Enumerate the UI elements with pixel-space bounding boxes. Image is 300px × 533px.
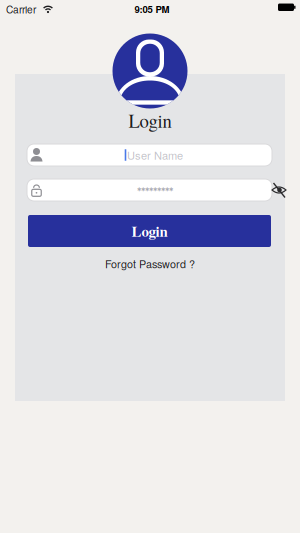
button[interactable]: ✱✱✱✱✱✱✱✱✱ [27, 179, 272, 201]
staticText: ✱✱✱✱✱✱✱✱✱ [137, 186, 173, 193]
staticText: Login [131, 220, 167, 242]
staticText: 9:05 PM [134, 2, 169, 16]
button[interactable] [270, 181, 288, 199]
staticText: User Name [127, 147, 183, 163]
staticText: Forgot Password ? [105, 256, 195, 271]
staticText: Carrier [6, 2, 36, 16]
button[interactable]: Forgot Password ? [105, 256, 195, 271]
staticText: Login [128, 108, 171, 133]
button[interactable]: User Name [27, 144, 272, 166]
button[interactable]: Login [28, 215, 271, 247]
